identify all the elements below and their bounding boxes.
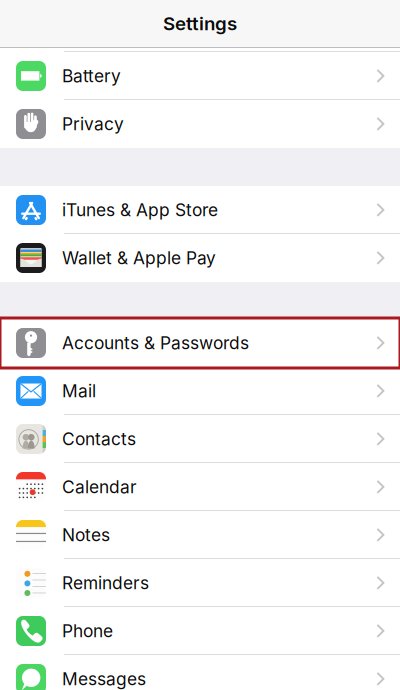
button[interactable]: iTunes & App Store — [0, 186, 400, 234]
staticText: Messages — [62, 668, 146, 689]
staticText: Settings — [163, 12, 237, 35]
staticText: Battery — [62, 65, 121, 86]
button[interactable]: Wallet & Apple Pay — [0, 234, 400, 282]
button[interactable]: Messages — [0, 655, 400, 690]
button[interactable]: Accounts & Passwords — [0, 319, 400, 367]
button[interactable]: Privacy — [0, 100, 400, 148]
staticText: Reminders — [62, 572, 149, 593]
staticText: Wallet & Apple Pay — [62, 247, 216, 268]
button[interactable]: Notes — [0, 511, 400, 559]
staticText: Contacts — [62, 428, 136, 449]
button[interactable]: Contacts — [0, 415, 400, 463]
button[interactable]: Reminders — [0, 559, 400, 607]
button[interactable]: Calendar — [0, 463, 400, 511]
button[interactable]: Phone — [0, 607, 400, 655]
staticText: Accounts & Passwords — [62, 332, 249, 353]
staticText: Calendar — [62, 476, 137, 497]
staticText: Privacy — [62, 113, 124, 134]
staticText: Phone — [62, 620, 113, 641]
staticText: Mail — [62, 380, 96, 401]
staticText: iTunes & App Store — [62, 199, 218, 220]
button[interactable]: Battery — [0, 52, 400, 100]
staticText: Notes — [62, 524, 110, 545]
button[interactable]: Mail — [0, 367, 400, 415]
